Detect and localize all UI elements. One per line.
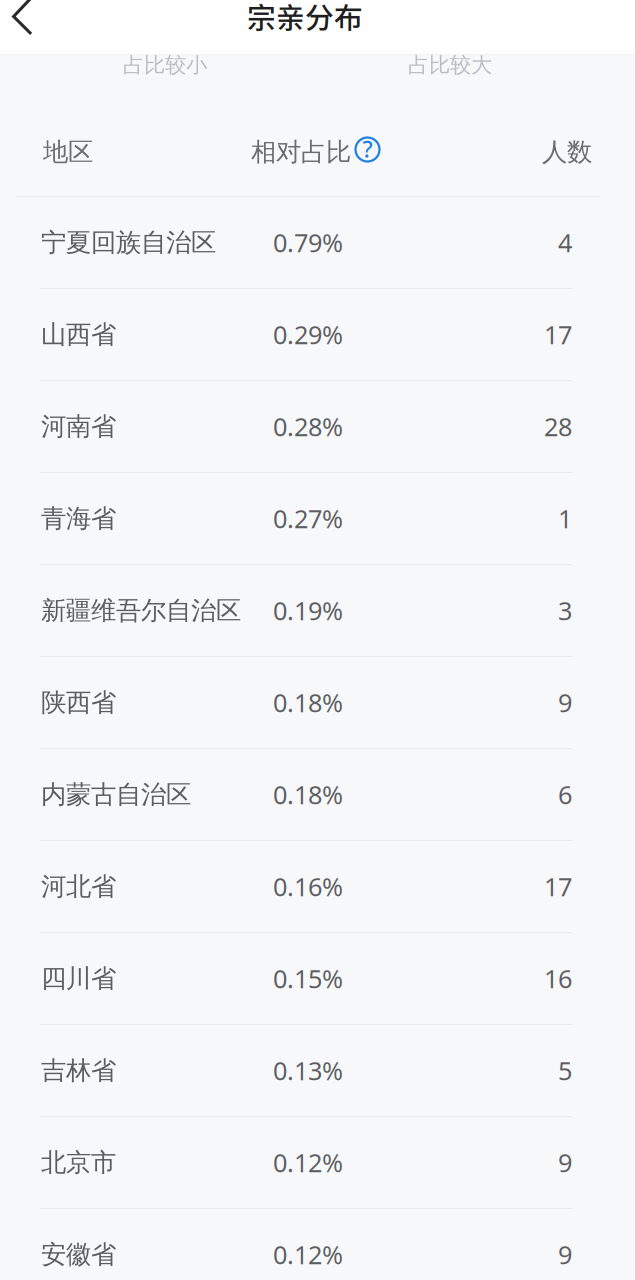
button[interactable]: About relative proportion <box>354 136 381 163</box>
button[interactable]: 内蒙古自治区 <box>0 749 635 840</box>
staticText: 地区 <box>43 136 93 167</box>
staticText: 吉林省 <box>41 1055 116 1086</box>
staticText: 宗亲分布 <box>247 0 363 37</box>
staticText: 四川省 <box>41 963 116 994</box>
button[interactable]: 吉林省 <box>0 1025 635 1116</box>
button[interactable]: 四川省 <box>0 933 635 1024</box>
button[interactable]: 北京市 <box>0 1117 635 1208</box>
staticText: 0.18% <box>273 686 343 719</box>
staticText: 0.19% <box>273 594 343 627</box>
staticText: 新疆维吾尔自治区 <box>41 595 241 626</box>
staticText: 5 <box>558 1054 572 1087</box>
staticText: 陕西省 <box>41 687 116 718</box>
staticText: 河南省 <box>41 411 116 442</box>
staticText: 0.29% <box>273 318 343 351</box>
staticText: 28 <box>544 410 572 443</box>
staticText: ? <box>362 134 372 164</box>
staticText: 0.79% <box>273 226 343 259</box>
button[interactable]: 安徽省 <box>0 1209 635 1280</box>
staticText: 北京市 <box>41 1147 116 1178</box>
staticText: 青海省 <box>41 503 116 534</box>
staticText: 9 <box>558 1146 572 1179</box>
staticText: 0.18% <box>273 778 343 811</box>
staticText: 0.28% <box>273 410 343 443</box>
staticText: 0.13% <box>273 1054 343 1087</box>
staticText: 4 <box>558 226 572 259</box>
staticText: 0.15% <box>273 962 343 995</box>
staticText: 16 <box>544 962 572 995</box>
button[interactable]: 新疆维吾尔自治区 <box>0 565 635 656</box>
button[interactable]: 河北省 <box>0 841 635 932</box>
staticText: 0.27% <box>273 502 343 535</box>
staticText: 1 <box>558 502 572 535</box>
staticText: 宁夏回族自治区 <box>41 227 216 258</box>
button[interactable]: 河南省 <box>0 381 635 472</box>
staticText: 相对占比 <box>251 136 351 167</box>
button[interactable]: 宁夏回族自治区 <box>0 197 635 288</box>
staticText: 17 <box>544 318 572 351</box>
staticText: 山西省 <box>41 319 116 350</box>
staticText: 0.12% <box>273 1146 343 1179</box>
staticText: 9 <box>558 1238 572 1271</box>
staticText: 占比较小 <box>123 52 207 78</box>
staticText: 人数 <box>542 136 592 167</box>
button[interactable]: 山西省 <box>0 289 635 380</box>
staticText: 0.16% <box>273 870 343 903</box>
staticText: 内蒙古自治区 <box>41 779 191 810</box>
button[interactable]: 陕西省 <box>0 657 635 748</box>
staticText: 17 <box>544 870 572 903</box>
staticText: 9 <box>558 686 572 719</box>
staticText: 占比较大 <box>408 52 492 78</box>
staticText: 安徽省 <box>41 1239 116 1270</box>
staticText: 3 <box>558 594 572 627</box>
staticText: 河北省 <box>41 871 116 902</box>
staticText: 6 <box>558 778 572 811</box>
staticText: 0.12% <box>273 1238 343 1271</box>
button[interactable]: Back <box>0 0 62 55</box>
button[interactable]: 青海省 <box>0 473 635 564</box>
